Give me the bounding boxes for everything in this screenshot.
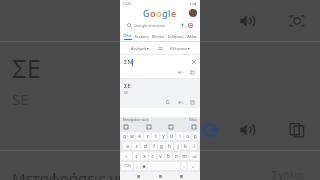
button[interactable]: o [184, 132, 191, 140]
button[interactable]: Ελληνικά ▾ [164, 46, 196, 51]
button[interactable]: q [121, 132, 127, 140]
staticText: z [135, 153, 138, 159]
staticText: y [162, 133, 165, 139]
staticText: . [183, 163, 185, 169]
button[interactable]: m [181, 152, 188, 160]
staticText: p [194, 133, 197, 139]
staticText: h [168, 143, 171, 149]
button[interactable]: Home [157, 173, 164, 180]
staticText: G [166, 99, 170, 106]
button[interactable]: Keyboard tool 4 [191, 124, 197, 130]
staticText: Αγγλικά ▾ [131, 46, 149, 51]
button[interactable]: j [174, 142, 181, 150]
button[interactable]: k [182, 142, 189, 150]
staticText: ⌫ [192, 155, 197, 158]
button[interactable]: ↵ [188, 162, 199, 170]
staticText: Ειδήσεις [168, 34, 184, 39]
button[interactable]: ?123 [121, 162, 133, 170]
button[interactable]: , [134, 162, 140, 170]
staticText: g [162, 7, 168, 19]
button[interactable]: t [152, 132, 159, 140]
staticText: ⇧ [125, 155, 128, 158]
button[interactable]: d [141, 142, 149, 150]
button[interactable]: Copy [286, 119, 308, 141]
staticText: Google translate [134, 23, 166, 28]
button[interactable]: l [190, 142, 197, 150]
staticText: Εικόνες [135, 34, 149, 39]
button[interactable]: n [173, 152, 180, 160]
button[interactable]: r [144, 132, 151, 140]
button[interactable]: ⇧ [121, 152, 132, 160]
staticText: r [147, 133, 149, 139]
button[interactable]: y [160, 132, 167, 140]
staticText: b [167, 153, 170, 159]
button[interactable]: Camera [286, 10, 308, 32]
staticText: e [171, 7, 177, 19]
button[interactable]: v [157, 152, 164, 160]
button[interactable]: Copy result [188, 98, 196, 106]
staticText: o [186, 133, 189, 139]
button[interactable]: Keyboard tool 1 [123, 124, 129, 130]
button[interactable]: Copy source [188, 68, 196, 76]
staticText: q [123, 133, 126, 139]
button[interactable]: h [166, 142, 173, 150]
button[interactable]: g [158, 142, 165, 150]
staticText: d [144, 143, 147, 149]
button[interactable]: x [141, 152, 148, 160]
staticText: l [193, 143, 195, 149]
staticText: Σχόλια [272, 168, 304, 180]
staticText: Τέλος [189, 118, 197, 122]
staticText: , [136, 163, 138, 169]
button[interactable]: Recents [178, 173, 185, 180]
button[interactable]: a [123, 142, 131, 150]
button[interactable]: Listen translation [236, 119, 258, 141]
staticText: Μεταφράστε αυτό [123, 118, 149, 122]
button[interactable]: ☻ [141, 162, 147, 170]
button[interactable]: Keyboard tool 2 [146, 124, 152, 130]
staticText: Ελληνικά ▾ [170, 46, 190, 51]
staticText: u [170, 133, 173, 139]
button[interactable]: Αγγλικά ▾ [124, 46, 156, 51]
staticText: c [151, 153, 154, 159]
staticText: Όλα [123, 33, 132, 38]
button[interactable]: Όλα [122, 33, 133, 40]
button[interactable]: w [128, 132, 135, 140]
button[interactable]: Account [189, 9, 197, 17]
staticText: ΣΝ [124, 58, 132, 66]
staticText: f [153, 143, 155, 149]
button[interactable]: p [192, 132, 199, 140]
button[interactable]: Search with Google [164, 98, 172, 106]
staticText: k [184, 143, 187, 149]
button[interactable]: Άλλα [186, 34, 198, 39]
button[interactable]: . [181, 162, 187, 170]
button[interactable]: Listen [236, 10, 258, 32]
staticText: t [155, 133, 157, 139]
staticText: SE [124, 90, 128, 95]
button[interactable]: Google [200, 120, 220, 140]
staticText: ΣΕ [124, 82, 131, 90]
button[interactable]: Listen source [176, 68, 184, 76]
staticText: ΣΕ [12, 50, 42, 85]
button[interactable]: Google translate [124, 20, 196, 31]
button[interactable]: f [150, 142, 157, 150]
button[interactable]: i [176, 132, 183, 140]
button[interactable]: Keyboard tool 3 [168, 124, 174, 130]
button[interactable]: c [149, 152, 156, 160]
staticText: w [130, 133, 134, 139]
button[interactable]: Back [135, 173, 142, 180]
button[interactable]: Βίντεο [151, 34, 166, 39]
button[interactable]: e [136, 132, 143, 140]
button[interactable]: u [168, 132, 175, 140]
button[interactable]: b [165, 152, 172, 160]
staticText: i [179, 133, 181, 139]
button[interactable]: Ειδήσεις [167, 34, 185, 39]
button[interactable]: s [132, 142, 140, 150]
button[interactable]: z [133, 152, 140, 160]
button[interactable]: Clear [190, 58, 197, 65]
staticText: Μεταφράσεις γι [12, 168, 123, 180]
button[interactable]: ⌫ [189, 152, 199, 160]
button[interactable]: Swap languages [156, 44, 164, 52]
button[interactable]: Εικόνες [134, 34, 150, 39]
button[interactable]: Listen result [176, 98, 184, 106]
